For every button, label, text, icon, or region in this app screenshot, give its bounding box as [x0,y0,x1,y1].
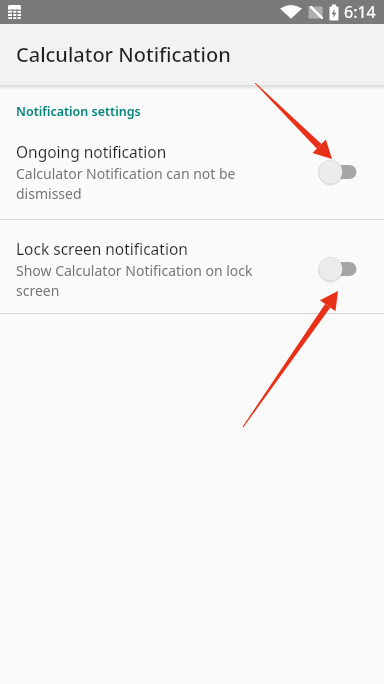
staticText: Notification settings [16,103,141,120]
staticText: Lock screen notification [16,238,188,259]
staticText: Show Calculator Notification on lock scr… [16,261,253,300]
staticText: 6:14 [344,1,376,23]
staticText: Calculator Notification can not be dismi… [16,164,236,203]
button[interactable]: Lock screen notification [0,238,384,300]
button[interactable] [316,158,357,186]
staticText: Calculator Notification [16,41,231,68]
button[interactable] [316,255,357,283]
button[interactable]: Ongoing notification [0,141,384,203]
staticText: Ongoing notification [16,141,167,162]
